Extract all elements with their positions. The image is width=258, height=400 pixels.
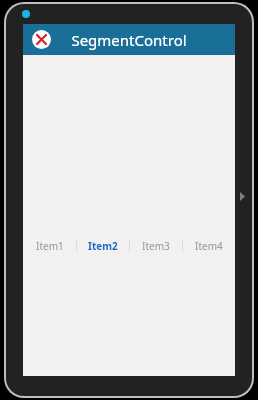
- staticText: Item2: [88, 239, 118, 253]
- staticText: SegmentControl: [23, 30, 235, 50]
- staticText: Item4: [195, 239, 223, 253]
- button[interactable]: Item4: [183, 235, 235, 257]
- button[interactable]: Item1: [23, 235, 76, 257]
- button[interactable]: Item2: [77, 235, 129, 257]
- staticText: Item3: [142, 239, 170, 253]
- button[interactable]: Close: [32, 30, 51, 49]
- staticText: Item1: [36, 239, 64, 253]
- button[interactable]: Item3: [130, 235, 182, 257]
